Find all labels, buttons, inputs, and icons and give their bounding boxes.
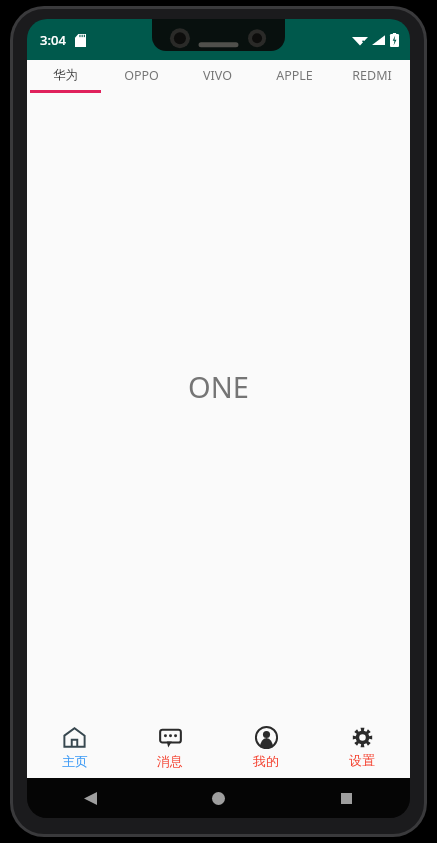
button[interactable]: VIVO: [179, 60, 256, 90]
button[interactable]: Home: [154, 778, 282, 818]
button[interactable]: OPPO: [103, 60, 179, 90]
button[interactable]: 华为: [27, 60, 103, 90]
staticText: 3:04: [40, 31, 66, 49]
staticText: 消息: [157, 753, 183, 769]
button[interactable]: REDMI: [333, 60, 410, 90]
button[interactable]: Home: [27, 716, 122, 778]
staticText: 华为: [53, 67, 78, 83]
staticText: OPPO: [124, 67, 159, 84]
staticText: 主页: [62, 753, 88, 769]
staticText: ONE: [188, 367, 249, 406]
button[interactable]: Settings: [314, 716, 410, 778]
button[interactable]: APPLE: [256, 60, 333, 90]
staticText: 我的: [253, 753, 279, 769]
staticText: VIVO: [203, 67, 232, 84]
button[interactable]: Recents: [282, 778, 410, 818]
staticText: REDMI: [352, 67, 392, 84]
button[interactable]: Messages: [122, 716, 218, 778]
staticText: 设置: [349, 752, 375, 768]
button[interactable]: Back: [27, 778, 154, 818]
button[interactable]: Profile: [218, 716, 314, 778]
staticText: APPLE: [276, 67, 313, 84]
